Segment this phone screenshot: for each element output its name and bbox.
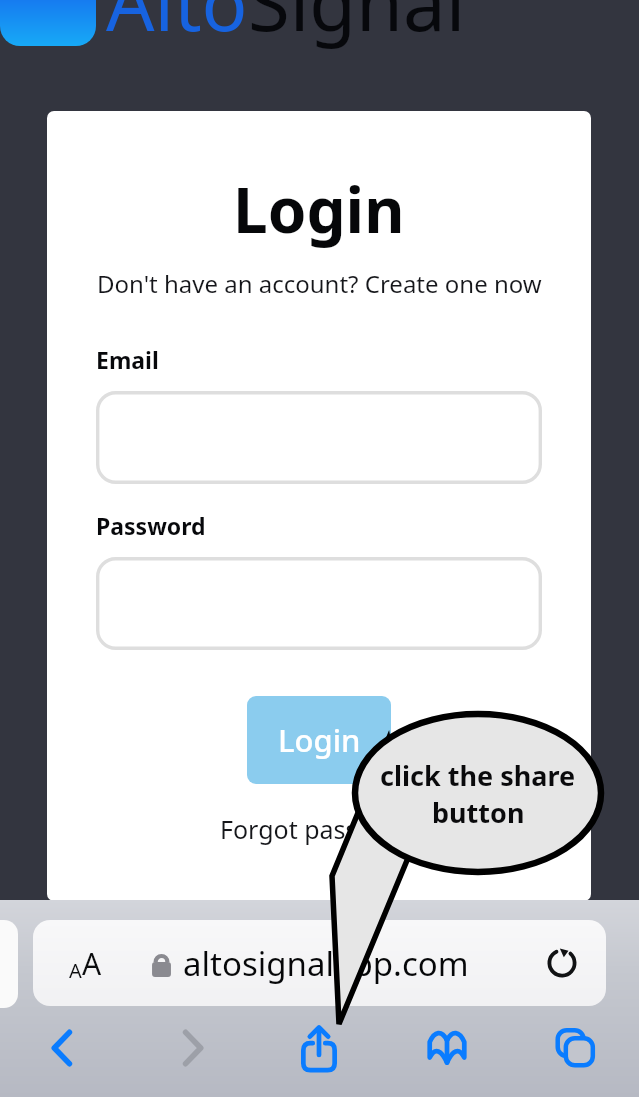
button[interactable] [96, 391, 542, 484]
button[interactable]: Bookmarks [383, 1003, 511, 1093]
button[interactable]: Tabs [511, 1003, 639, 1093]
staticText: Login [278, 719, 361, 761]
button[interactable]: Forward [127, 1003, 255, 1093]
staticText: Login [233, 167, 405, 251]
staticText: Alto [106, 0, 248, 54]
button[interactable] [96, 557, 542, 650]
staticText: Don't have an account? Create one now [97, 267, 542, 300]
button[interactable]: Forgot password [220, 812, 418, 846]
other: AltoSignal app icon [0, 0, 96, 46]
staticText: Email [96, 344, 159, 375]
staticText: Forgot password [220, 812, 418, 846]
button[interactable]: Back [0, 1003, 127, 1093]
button[interactable]: Login [247, 696, 391, 784]
staticText: button [432, 794, 525, 831]
button[interactable]: Don't have an account? Create one now [47, 267, 591, 300]
button[interactable]: Text size [53, 931, 117, 995]
button[interactable]: Share [255, 1003, 383, 1093]
staticText: A [69, 957, 82, 984]
button[interactable]: Reload [532, 933, 592, 993]
staticText: click the share [380, 757, 576, 794]
button[interactable]: Text size [33, 920, 606, 1006]
staticText: Signal [248, 0, 466, 54]
staticText: A [82, 943, 102, 984]
staticText: altosignalapp.com [183, 941, 469, 986]
staticText: Password [96, 510, 206, 541]
